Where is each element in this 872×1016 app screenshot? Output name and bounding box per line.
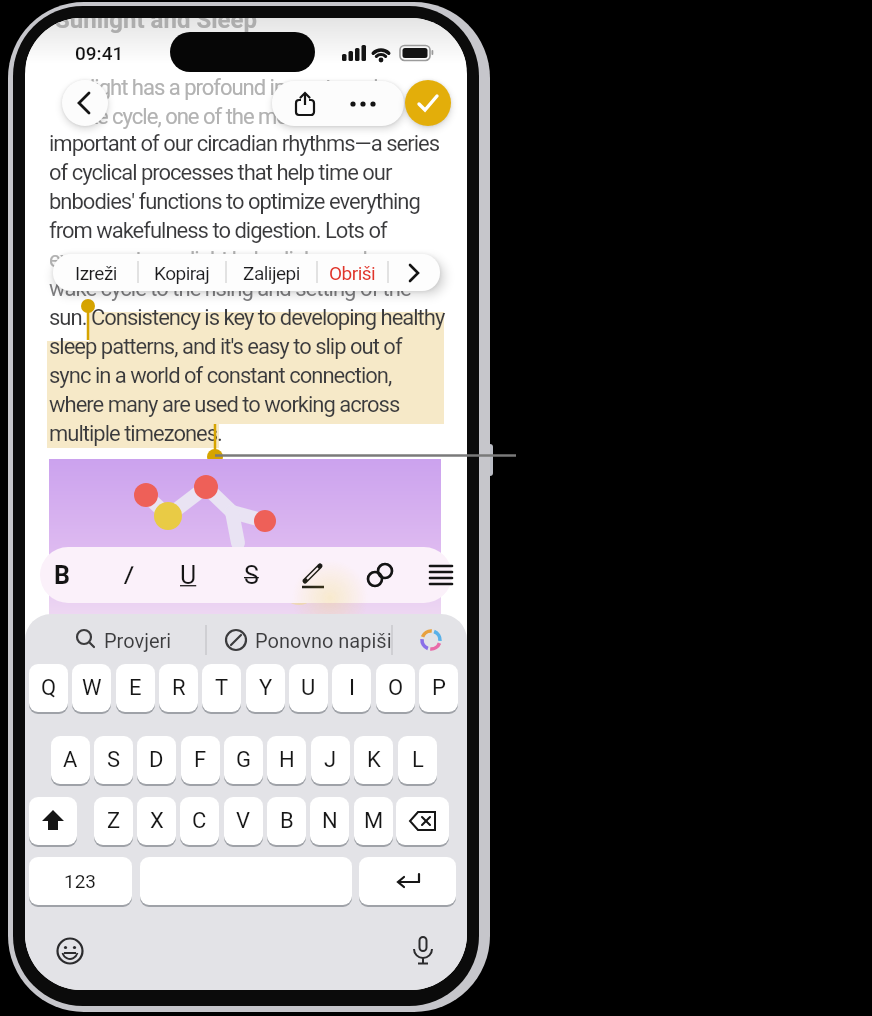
- staticText: Obriši: [329, 262, 376, 284]
- button[interactable]: [415, 618, 455, 662]
- button[interactable]: W: [72, 664, 111, 712]
- button[interactable]: S: [226, 547, 276, 603]
- button[interactable]: [73, 618, 203, 662]
- button[interactable]: R: [159, 664, 198, 712]
- button[interactable]: K: [354, 736, 393, 784]
- staticText: 123: [64, 870, 97, 892]
- staticText: Izreži: [75, 262, 117, 284]
- button[interactable]: I: [332, 664, 371, 712]
- button[interactable]: V: [224, 797, 263, 845]
- button[interactable]: [50, 931, 90, 971]
- staticText: M: [364, 808, 384, 834]
- staticText: C: [192, 808, 207, 834]
- staticText: sun. Consistency is key to developing he…: [49, 305, 445, 446]
- staticText: B: [54, 561, 70, 590]
- staticText: K: [367, 747, 381, 773]
- staticText: U: [180, 561, 197, 590]
- button[interactable]: [388, 254, 440, 291]
- button[interactable]: Izreži: [53, 254, 138, 291]
- staticText: D: [149, 747, 164, 773]
- button[interactable]: [330, 81, 396, 126]
- button[interactable]: Obriši: [317, 254, 388, 291]
- staticText: wake cycle to the rising and setting of …: [49, 276, 411, 302]
- button[interactable]: [62, 80, 108, 126]
- button[interactable]: [355, 547, 405, 603]
- staticText: G: [236, 747, 251, 773]
- button[interactable]: N: [310, 797, 349, 845]
- button[interactable]: [403, 931, 443, 971]
- button[interactable]: E: [116, 664, 155, 712]
- button[interactable]: B: [267, 797, 306, 845]
- button[interactable]: [289, 547, 339, 603]
- button[interactable]: [29, 797, 77, 845]
- button[interactable]: D: [137, 736, 176, 784]
- staticText: S: [107, 747, 121, 773]
- button[interactable]: A: [51, 736, 90, 784]
- staticText: Z: [107, 808, 121, 834]
- staticText: important of our circadian rhythms—a ser…: [49, 131, 440, 243]
- button[interactable]: U: [289, 664, 328, 712]
- staticText: F: [194, 747, 207, 773]
- button[interactable]: Zalijepi: [226, 254, 317, 291]
- staticText: E: [129, 675, 142, 701]
- staticText: R: [172, 675, 186, 701]
- button[interactable]: L: [398, 736, 437, 784]
- button[interactable]: [221, 618, 381, 662]
- button[interactable]: [405, 80, 451, 126]
- button[interactable]: Kopiraj: [138, 254, 226, 291]
- staticText: I: [349, 675, 355, 701]
- button[interactable]: O: [376, 664, 415, 712]
- button[interactable]: F: [181, 736, 220, 784]
- staticText: Kopiraj: [154, 262, 210, 284]
- button[interactable]: H: [267, 736, 306, 784]
- button[interactable]: [423, 547, 459, 603]
- button[interactable]: C: [180, 797, 219, 845]
- button[interactable]: B: [37, 547, 87, 603]
- staticText: Y: [259, 675, 273, 701]
- button[interactable]: S: [94, 736, 133, 784]
- button[interactable]: [396, 797, 449, 845]
- staticText: Q: [41, 675, 57, 701]
- staticText: X: [150, 808, 164, 834]
- button[interactable]: T: [202, 664, 241, 712]
- staticText: B: [280, 808, 294, 834]
- button[interactable]: 123: [29, 857, 132, 905]
- button[interactable]: J: [311, 736, 350, 784]
- staticText: L: [412, 747, 424, 773]
- button[interactable]: Q: [29, 664, 68, 712]
- button[interactable]: Z: [94, 797, 133, 845]
- staticText: Ponovno napiši: [255, 629, 392, 652]
- staticText: light has a profound impact on sle: [90, 75, 389, 101]
- button[interactable]: [359, 857, 456, 905]
- staticText: P: [432, 675, 446, 701]
- staticText: Provjeri: [104, 629, 172, 652]
- button[interactable]: P: [419, 664, 458, 712]
- button[interactable]: [140, 857, 352, 905]
- staticText: U: [301, 675, 316, 701]
- button[interactable]: [272, 81, 338, 126]
- staticText: N: [322, 808, 338, 834]
- staticText: A: [63, 747, 78, 773]
- staticText: H: [279, 747, 295, 773]
- button[interactable]: M: [354, 797, 393, 845]
- staticText: Zalijepi: [243, 262, 300, 284]
- staticText: exposure to sunlight helps link our slee…: [49, 247, 405, 273]
- staticText: J: [324, 747, 337, 773]
- staticText: Sunlight and Sleep: [55, 18, 257, 34]
- button[interactable]: G: [224, 736, 263, 784]
- staticText: S: [244, 561, 259, 590]
- button[interactable]: U: [163, 547, 213, 603]
- staticText: ke cycle, one of the most crucial: [87, 104, 368, 130]
- staticText: W: [82, 675, 102, 701]
- staticText: T: [215, 675, 229, 701]
- staticText: V: [236, 808, 251, 834]
- button[interactable]: X: [137, 797, 176, 845]
- staticText: I: [123, 561, 130, 590]
- staticText: 09:41: [75, 42, 124, 64]
- button[interactable]: Y: [246, 664, 285, 712]
- button[interactable]: I: [101, 547, 151, 603]
- staticText: O: [388, 675, 404, 701]
